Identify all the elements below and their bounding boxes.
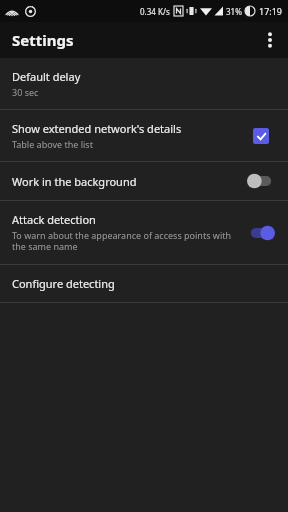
button[interactable]: Show extended network's details [0, 110, 288, 161]
staticText: Configure detecting [12, 276, 115, 291]
staticText: 17:19 [259, 5, 283, 17]
staticText: Attack detection [12, 212, 96, 227]
staticText: To warn about the appearance of access p… [12, 229, 236, 253]
button[interactable]: Default delay [0, 58, 288, 109]
button[interactable]: Attack detection [0, 201, 288, 264]
button[interactable]: Work in the background [0, 162, 288, 200]
staticText: 30 sec [12, 86, 39, 98]
staticText: 31% [226, 6, 242, 17]
staticText: Default delay [12, 69, 81, 84]
staticText: Work in the background [12, 174, 137, 189]
staticText: Settings [12, 30, 74, 50]
button[interactable]: Attack detection switch, on [246, 225, 276, 241]
button[interactable]: Show extended network's details checkbox [253, 128, 269, 144]
button[interactable]: More options [252, 22, 288, 58]
staticText: Show extended network's details [12, 121, 182, 136]
staticText: Table above the list [12, 138, 93, 150]
staticText: 0.34 K/s [140, 6, 170, 17]
button[interactable]: Configure detecting [0, 265, 288, 302]
button[interactable]: Work in the background switch, off [246, 173, 276, 189]
